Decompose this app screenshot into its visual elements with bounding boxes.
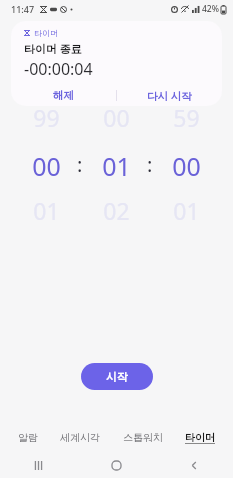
button[interactable]: 세계시각 (56, 422, 104, 452)
button[interactable]: 알람 (14, 422, 42, 452)
button[interactable]: 해제 (11, 85, 116, 106)
staticText: 01 (33, 195, 60, 225)
button[interactable]: Recent apps (0, 452, 77, 478)
button[interactable]: Home (77, 452, 155, 478)
staticText: 알람 (18, 431, 38, 444)
staticText: 00 (103, 102, 130, 132)
button[interactable]: 타이머 (181, 422, 219, 452)
staticText: 다시 시작 (147, 89, 192, 103)
staticText: 타이머 (34, 28, 58, 38)
staticText: 99 (33, 102, 60, 132)
button[interactable]: Back (155, 452, 233, 478)
button[interactable]: 다시 시작 (117, 85, 222, 106)
button[interactable]: 00 (11, 149, 81, 179)
staticText: 해제 (53, 89, 74, 102)
button[interactable]: 01 (11, 195, 81, 225)
button[interactable]: 01 (151, 195, 221, 225)
button[interactable]: 02 (81, 195, 151, 225)
staticText: 00 (172, 149, 201, 179)
staticText: 02 (103, 195, 130, 225)
button[interactable]: 스톱워치 (119, 422, 167, 452)
staticText: 스톱워치 (123, 431, 163, 444)
staticText: 세계시각 (60, 431, 100, 444)
button[interactable]: 01 (81, 149, 151, 179)
button[interactable]: 00 (81, 102, 151, 132)
staticText: 01 (102, 149, 131, 179)
staticText: 00 (32, 149, 61, 179)
button[interactable]: 타이머 (11, 21, 222, 106)
staticText: 타이머 종료 (24, 41, 82, 56)
staticText: 01 (173, 195, 200, 225)
staticText: -00:00:04 (24, 58, 93, 80)
staticText: 11:47 (11, 3, 35, 15)
button[interactable]: 59 (151, 102, 221, 132)
staticText: 59 (173, 102, 200, 132)
button[interactable]: 99 (11, 102, 81, 132)
button[interactable]: 시작 (81, 363, 153, 390)
staticText: 42% (202, 3, 219, 15)
staticText: 시작 (106, 370, 128, 384)
staticText: 타이머 (185, 431, 215, 444)
button[interactable]: 00 (151, 149, 221, 179)
